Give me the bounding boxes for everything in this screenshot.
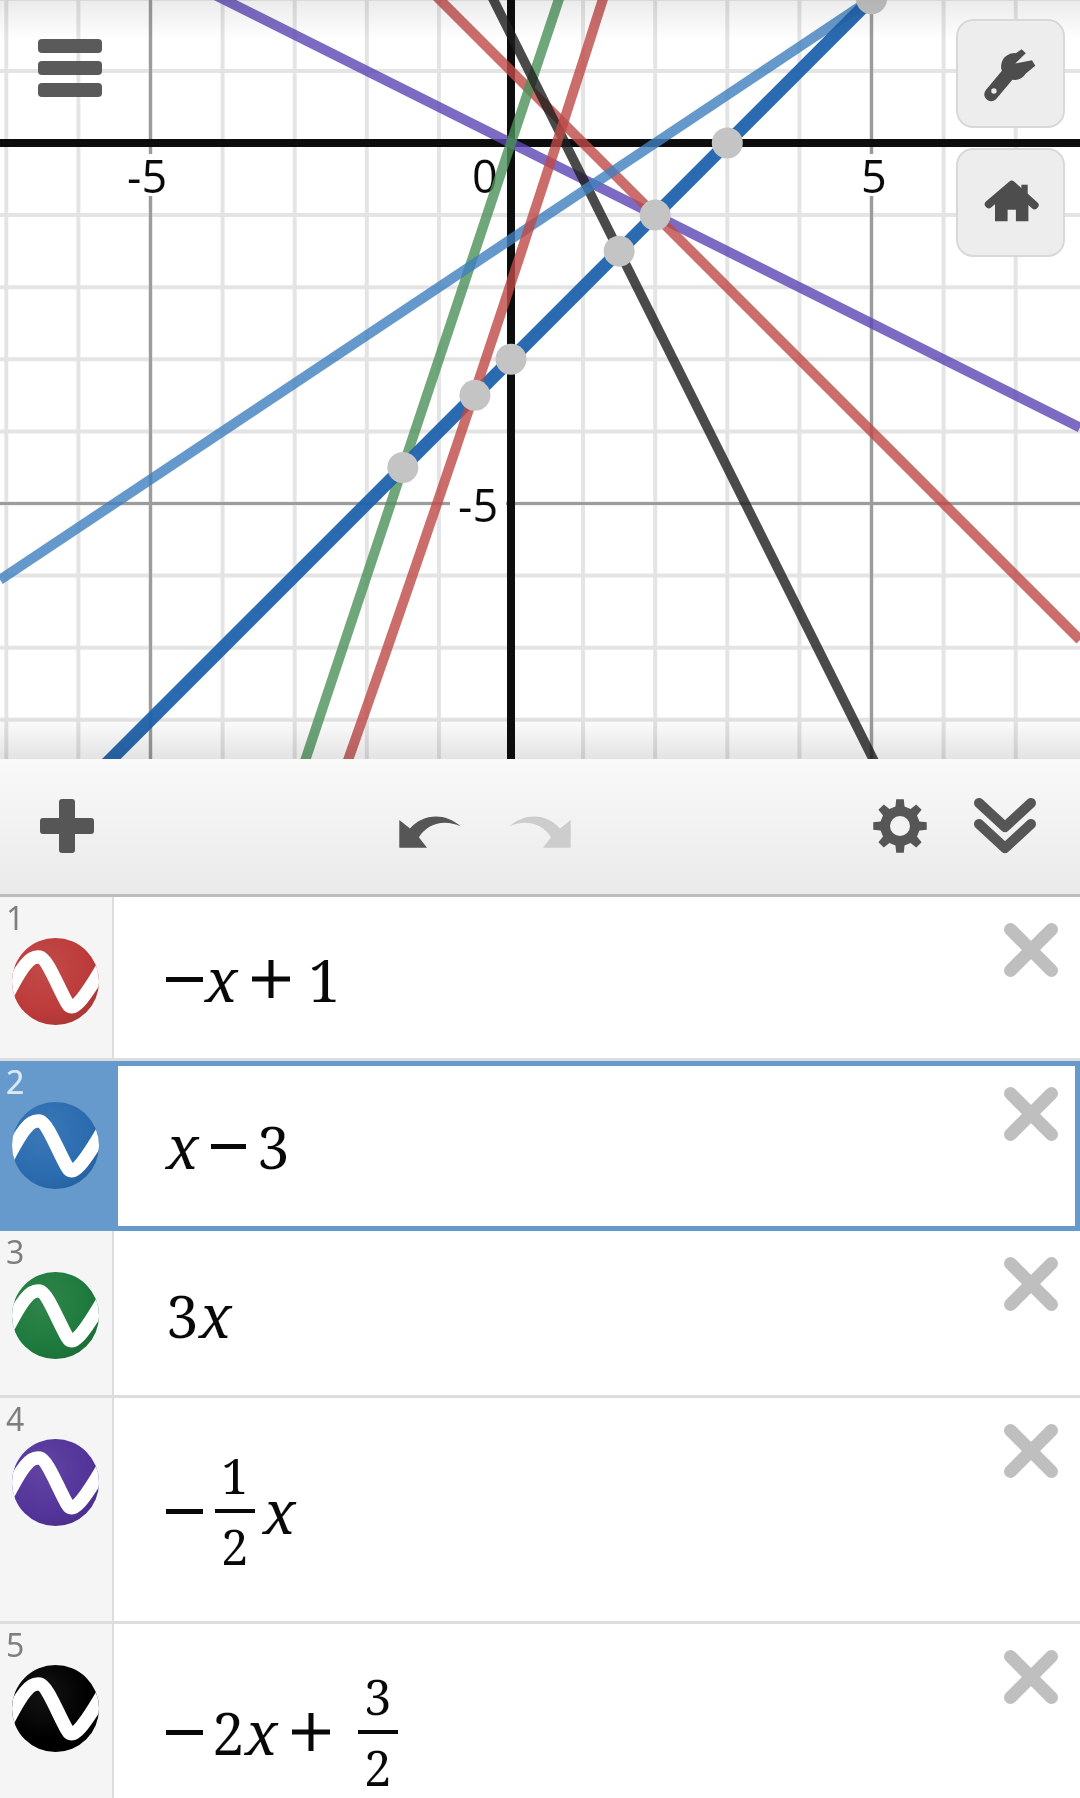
staticText: 3 [364,1663,392,1730]
button[interactable]: Delete expression [981,1627,1080,1727]
staticText: x [245,1691,278,1773]
button[interactable]: Delete expression [981,1401,1080,1501]
button[interactable]: 4 [0,1398,1080,1624]
staticText: x [263,1470,296,1552]
button[interactable]: Menu [18,16,122,120]
staticText: x [199,1274,232,1356]
button[interactable]: Settings [850,776,950,876]
staticText: 3 [6,1230,25,1274]
staticText: -5 [127,145,168,206]
button[interactable]: Redo [485,776,595,886]
staticText: 1 [308,940,341,1019]
staticText: 0 [472,145,498,206]
staticText: x [166,1105,199,1187]
staticText: 2 [364,1734,392,1798]
staticText: 5 [6,1623,25,1667]
button[interactable]: Add expression [17,776,117,876]
staticText: 1 [221,1442,249,1509]
staticText: x [205,938,238,1020]
staticText: 5 [861,145,887,206]
button[interactable]: Graph settings [956,19,1065,128]
button[interactable]: 2 [0,1061,1080,1231]
staticText: -5 [458,474,499,535]
button[interactable]: Delete expression [981,1234,1080,1334]
staticText: 2 [221,1513,249,1580]
button[interactable]: Home [956,148,1065,257]
staticText: 3 [166,1276,199,1355]
staticText: 4 [6,1397,25,1441]
button[interactable]: Delete expression [981,1064,1080,1164]
staticText: 1 [6,896,25,940]
button[interactable]: Undo [375,776,485,886]
button[interactable]: 5 [0,1624,1080,1798]
button[interactable]: 3 [0,1231,1080,1398]
staticText: 2 [212,1693,245,1772]
button[interactable]: 1 [0,897,1080,1061]
button[interactable]: Collapse list [955,776,1055,876]
staticText: 3 [257,1107,290,1186]
staticText: 2 [6,1060,25,1104]
button[interactable]: Delete expression [981,900,1080,1000]
